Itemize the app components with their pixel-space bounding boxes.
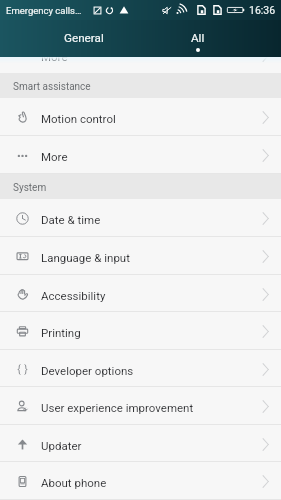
staticText: Date & time	[41, 213, 251, 226]
button[interactable]: Accessibility	[0, 275, 281, 311]
staticText: Accessibility	[41, 289, 251, 302]
staticText: General	[64, 31, 104, 45]
staticText: More	[41, 150, 251, 163]
staticText: Smart assistance	[13, 81, 91, 93]
button[interactable]: Language & input	[0, 237, 281, 274]
staticText: Printing	[41, 326, 251, 339]
button[interactable]: About phone	[0, 462, 281, 499]
staticText: Motion control	[41, 112, 251, 125]
staticText: More	[41, 50, 251, 63]
button[interactable]: User experience improvement	[0, 387, 281, 424]
button[interactable]: Motion control	[0, 98, 281, 135]
button[interactable]: Updater	[0, 425, 281, 461]
button[interactable]: More	[0, 136, 281, 173]
staticText: System	[13, 182, 47, 194]
button[interactable]: General	[28, 20, 139, 57]
staticText: Emergency calls…	[6, 5, 82, 16]
button[interactable]: More	[0, 36, 281, 73]
staticText: Updater	[41, 439, 251, 452]
staticText: 16:36	[249, 4, 276, 16]
staticText: About phone	[41, 476, 251, 489]
staticText: All	[191, 31, 205, 45]
button[interactable]: Date & time	[0, 199, 281, 236]
staticText: Developer options	[41, 364, 251, 377]
staticText: Language & input	[41, 251, 251, 264]
staticText: User experience improvement	[41, 401, 251, 414]
button[interactable]: Developer options	[0, 350, 281, 386]
button[interactable]: All	[142, 20, 253, 57]
button[interactable]: Printing	[0, 312, 281, 349]
